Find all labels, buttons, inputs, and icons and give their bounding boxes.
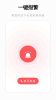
- staticText: 紧急情况下长按报警按钮: [11, 14, 44, 17]
- staticText: 联系客服: [24, 79, 36, 83]
- staticText: 一键报警: [18, 4, 38, 11]
- button[interactable]: 一键报警: [19, 45, 36, 62]
- button[interactable]: 联系客服: [17, 78, 39, 84]
